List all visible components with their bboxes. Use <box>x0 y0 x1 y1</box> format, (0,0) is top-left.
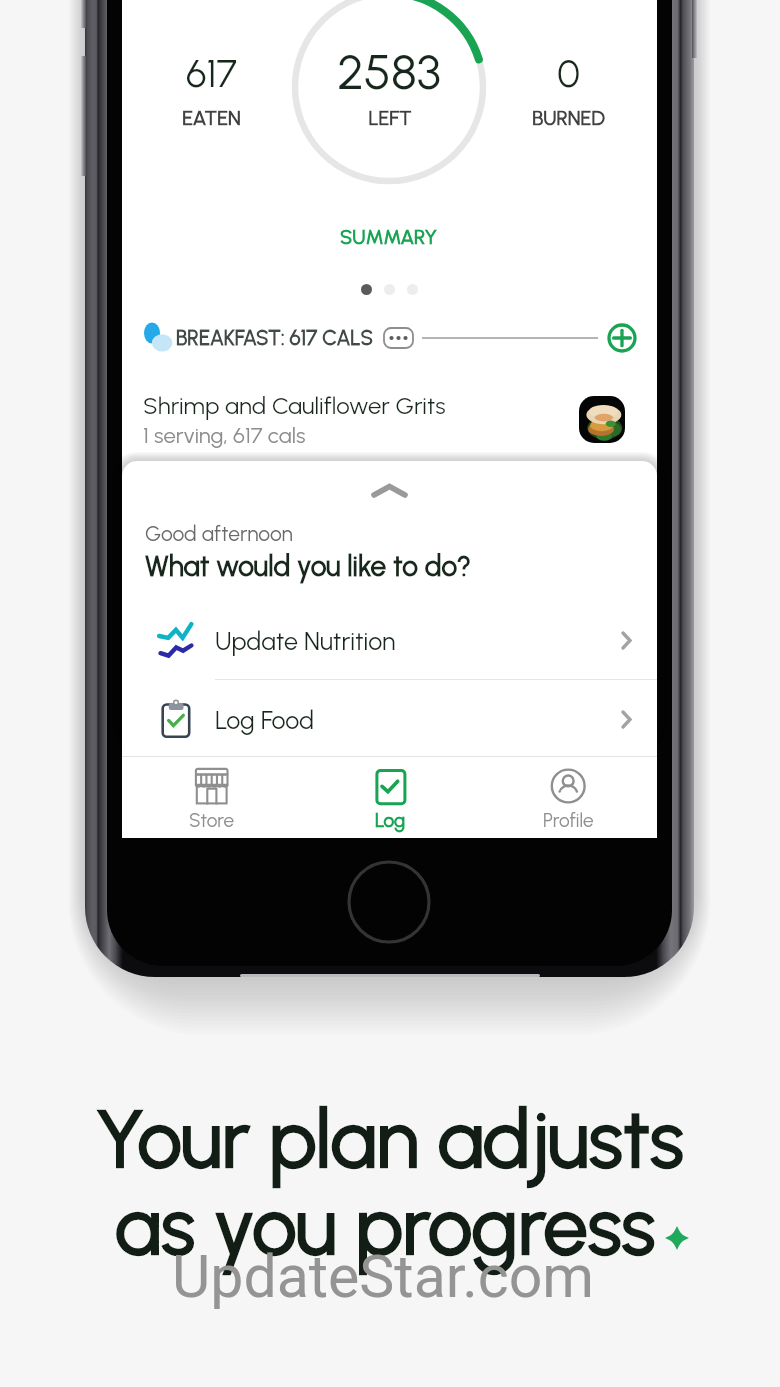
staticText: Store <box>189 809 235 832</box>
button[interactable]: Collapse sheet <box>371 483 408 503</box>
button[interactable]: Profile <box>479 757 657 838</box>
staticText: EATEN <box>182 106 241 130</box>
staticText: 2583 <box>337 42 441 101</box>
staticText: 617 <box>186 51 237 97</box>
button[interactable]: Meal options <box>384 328 413 348</box>
staticText: Good afternoon <box>145 521 293 546</box>
staticText: LEFT <box>368 106 412 130</box>
staticText: 0 <box>557 51 580 97</box>
staticText: Log <box>375 809 406 832</box>
staticText: Shrimp and Cauliflower Grits <box>143 391 446 420</box>
staticText: Your plan adjusts <box>96 1092 684 1187</box>
staticText: 1 serving, 617 cals <box>143 422 306 448</box>
button[interactable]: Log <box>301 757 479 838</box>
staticText: Update Nutrition <box>215 626 396 656</box>
staticText: as you progress <box>115 1179 656 1274</box>
button[interactable]: SUMMARY <box>309 222 469 252</box>
button[interactable]: Log Food <box>122 680 657 757</box>
button[interactable]: Shrimp and Cauliflower Grits <box>122 376 657 462</box>
staticText: UpdateStar.com <box>172 1242 595 1311</box>
staticText: Log Food <box>215 705 314 735</box>
button[interactable]: Update Nutrition <box>122 601 657 679</box>
staticText: Profile <box>543 809 594 832</box>
staticText: What would you like to do? <box>145 549 472 583</box>
staticText: BREAKFAST: 617 CALS <box>176 326 374 351</box>
button[interactable]: Add breakfast food <box>607 323 637 353</box>
staticText: SUMMARY <box>340 225 438 249</box>
button[interactable]: Store <box>122 757 301 838</box>
staticText: BURNED <box>532 106 605 130</box>
